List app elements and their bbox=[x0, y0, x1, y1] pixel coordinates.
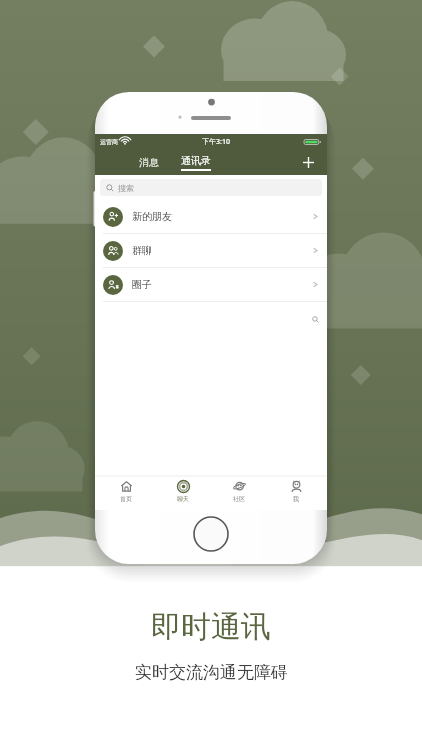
staticText: 实时交流沟通无障碍 bbox=[135, 662, 288, 683]
button[interactable]: 通讯录 bbox=[181, 149, 211, 175]
staticText: 搜索 bbox=[118, 183, 134, 193]
button[interactable]: 社区 bbox=[213, 480, 265, 510]
staticText: 首页 bbox=[120, 495, 132, 503]
button[interactable]: 聊天 bbox=[157, 480, 209, 510]
button[interactable]: 新的朋友 bbox=[95, 200, 327, 233]
button[interactable]: 圈子 bbox=[95, 268, 327, 301]
staticText: 聊天 bbox=[177, 495, 189, 503]
staticText: 群聊 bbox=[132, 244, 152, 257]
staticText: 新的朋友 bbox=[132, 210, 172, 223]
button[interactable]: Add bbox=[295, 149, 321, 175]
button[interactable]: 搜索 bbox=[100, 179, 322, 196]
staticText: 消息 bbox=[139, 156, 159, 169]
staticText: 社区 bbox=[233, 495, 245, 503]
staticText: 我 bbox=[293, 495, 299, 503]
button[interactable]: 群聊 bbox=[95, 234, 327, 267]
staticText: 运营商 bbox=[100, 138, 118, 146]
button[interactable]: 首页 bbox=[100, 480, 152, 510]
staticText: 下午3:10 bbox=[202, 137, 230, 147]
staticText: 通讯录 bbox=[181, 154, 211, 167]
button[interactable]: 消息 bbox=[139, 149, 159, 175]
button[interactable]: 我 bbox=[270, 480, 322, 510]
staticText: 即时通讯 bbox=[151, 608, 271, 646]
staticText: 圈子 bbox=[132, 278, 152, 291]
